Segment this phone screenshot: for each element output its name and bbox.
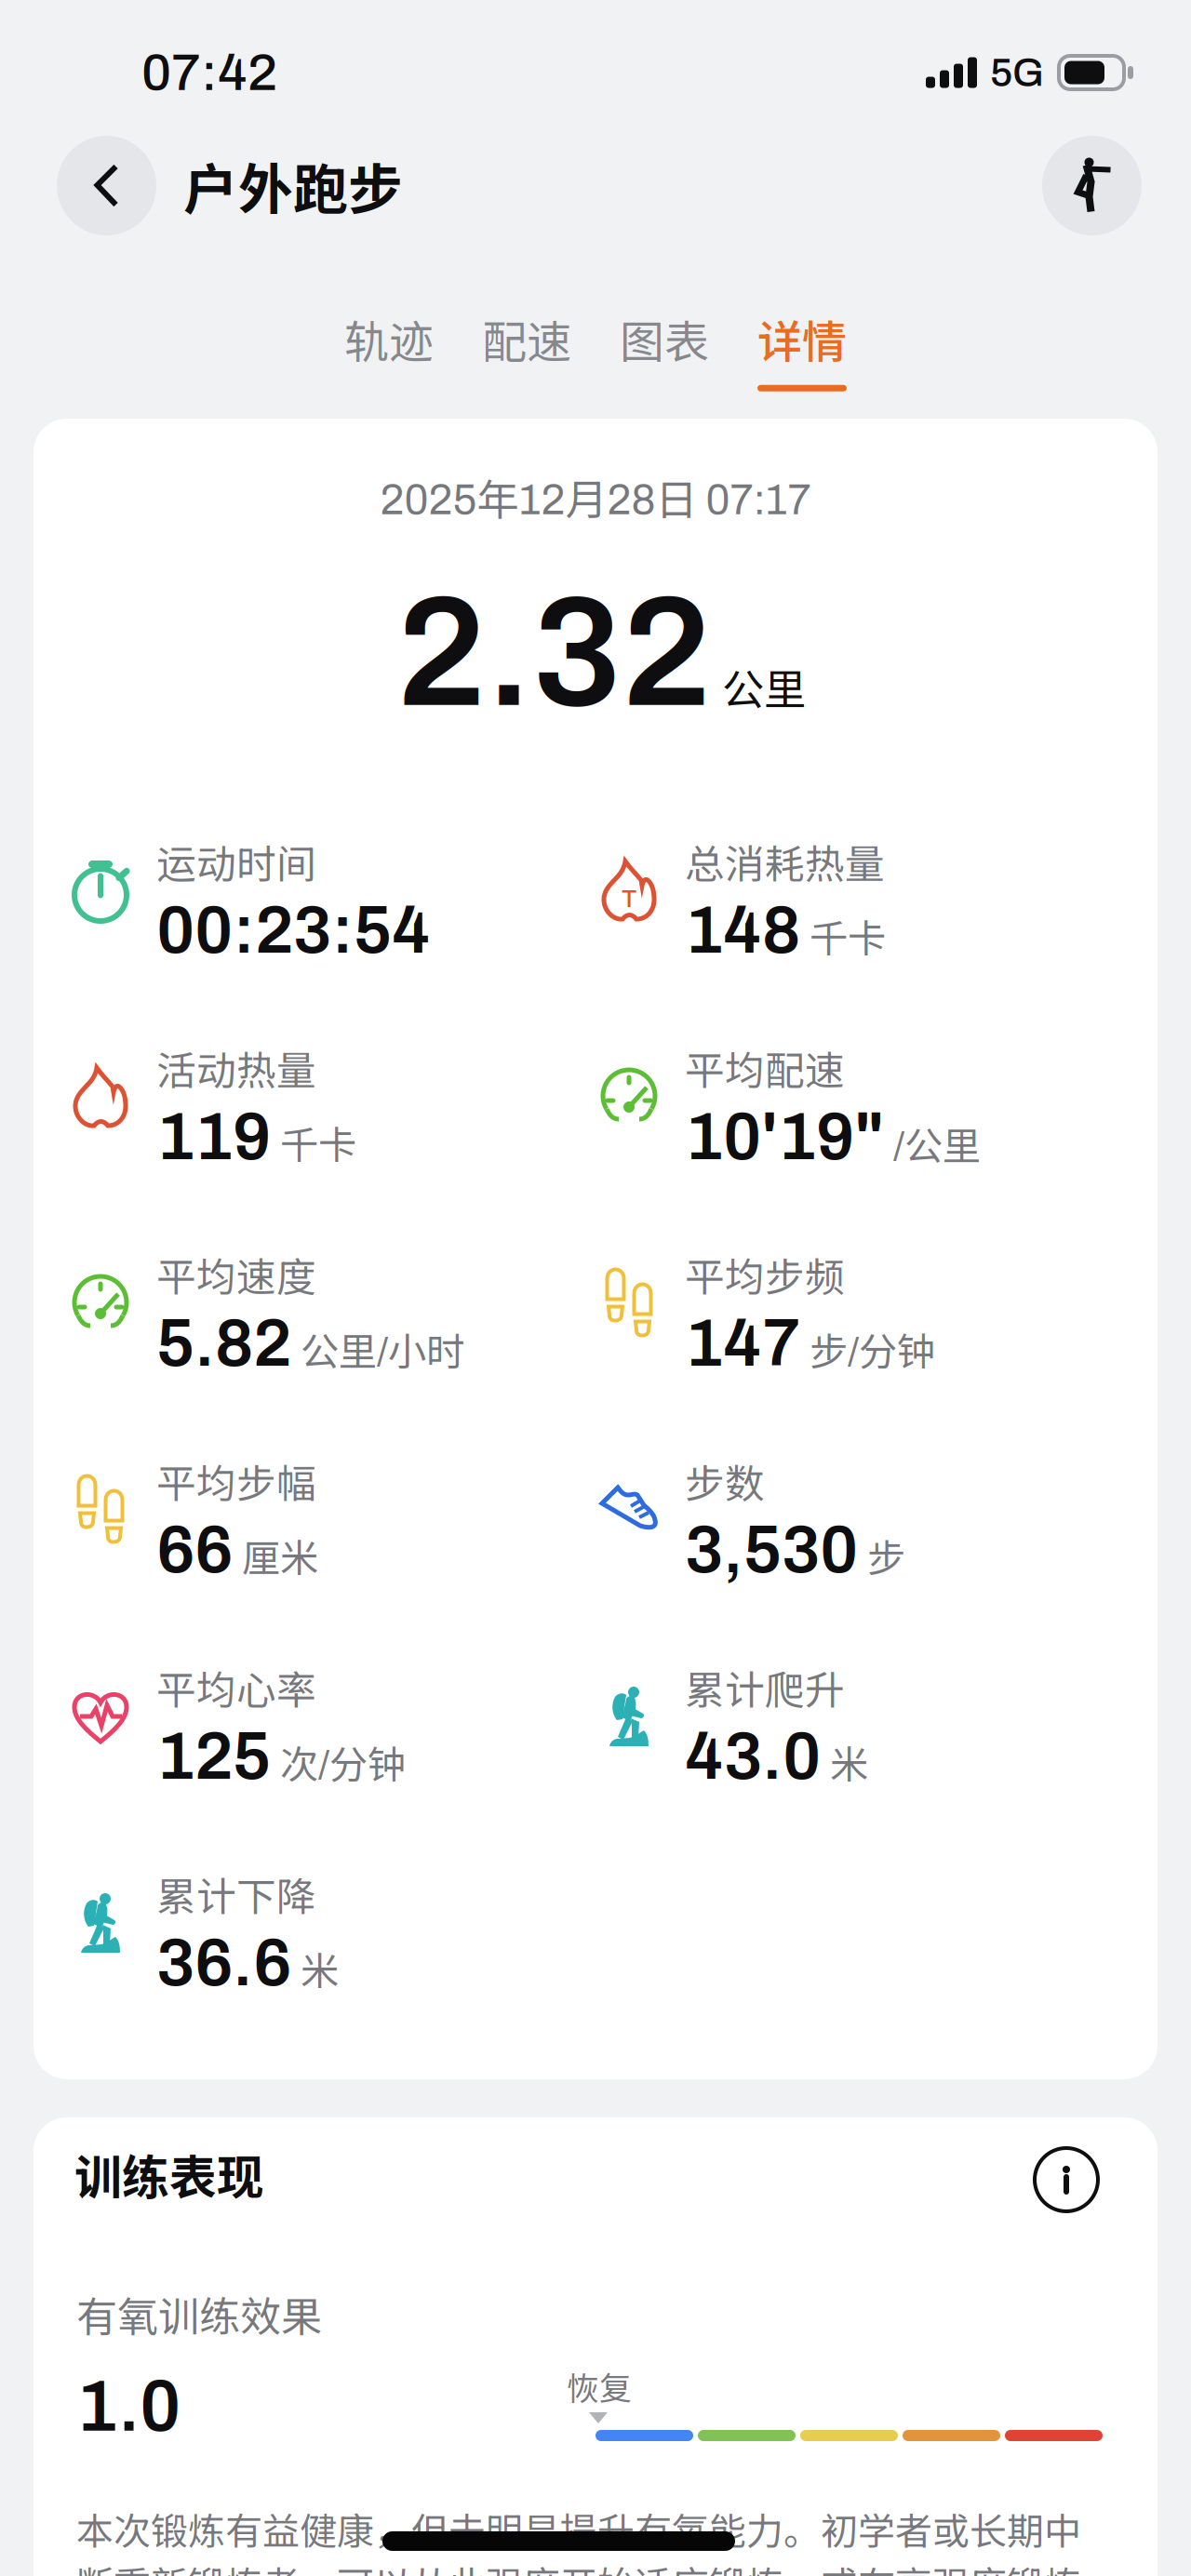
- staticText: 步数: [685, 1452, 765, 1510]
- staticText: 平均速度: [156, 1246, 316, 1303]
- staticText: 2025年12月28日 07:17: [380, 466, 811, 527]
- staticText: 累计爬升: [685, 1659, 845, 1716]
- staticText: 平均步幅: [156, 1452, 316, 1510]
- staticText: 平均步频: [685, 1246, 845, 1303]
- staticText: 米: [830, 1734, 868, 1790]
- staticText: 66: [156, 1513, 233, 1586]
- staticText: 有氧训练效果: [76, 2284, 322, 2343]
- staticText: 07:42: [141, 44, 277, 101]
- staticText: 00:23:54: [156, 894, 431, 967]
- staticText: 36.6: [156, 1926, 291, 1999]
- staticText: /公里: [893, 1116, 981, 1171]
- staticText: T: [622, 885, 636, 912]
- staticText: 千卡: [810, 908, 886, 964]
- staticText: 148: [685, 894, 800, 967]
- staticText: 本次锻炼有益健康，但未明显提升有氧能力。初学者或长期中断重新锻炼者，可以从此强度…: [76, 2502, 1081, 2576]
- staticText: 详情: [757, 306, 847, 371]
- staticText: 户外跑步: [183, 146, 403, 225]
- staticText: 运动时间: [156, 833, 316, 890]
- staticText: 147: [685, 1307, 800, 1380]
- button[interactable]: 配速: [458, 312, 595, 386]
- staticText: 5.82: [156, 1307, 291, 1380]
- staticText: 公里: [722, 656, 806, 717]
- staticText: 总消耗热量: [685, 833, 885, 890]
- staticText: 训练表现: [74, 2140, 264, 2208]
- staticText: 累计下降: [156, 1865, 316, 1923]
- button[interactable]: 详情: [733, 312, 871, 386]
- staticText: 恢复: [567, 2363, 632, 2410]
- staticText: 43.0: [685, 1720, 821, 1793]
- staticText: 米: [301, 1941, 339, 1996]
- staticText: 步/分钟: [810, 1321, 935, 1377]
- staticText: 平均配速: [685, 1039, 845, 1097]
- staticText: 千卡: [280, 1115, 356, 1170]
- button[interactable]: 训练表现说明: [1027, 2141, 1105, 2219]
- staticText: 119: [156, 1100, 271, 1173]
- staticText: 厘米: [242, 1528, 318, 1583]
- staticText: 10'19": [685, 1100, 884, 1173]
- staticText: 步: [867, 1528, 905, 1583]
- staticText: 3,530: [685, 1513, 858, 1586]
- button[interactable]: 轨迹: [320, 312, 458, 386]
- button[interactable]: 返回: [57, 136, 156, 235]
- staticText: 次/分钟: [280, 1734, 406, 1790]
- staticText: 平均心率: [156, 1659, 316, 1716]
- staticText: 5G: [990, 51, 1044, 94]
- staticText: 配速: [482, 306, 571, 371]
- button[interactable]: 运动类型: [1042, 136, 1142, 235]
- staticText: 125: [156, 1720, 271, 1793]
- button[interactable]: 图表: [595, 312, 733, 386]
- staticText: 图表: [620, 306, 709, 371]
- staticText: 活动热量: [156, 1039, 316, 1097]
- staticText: 2.32: [396, 569, 711, 737]
- staticText: 公里/小时: [301, 1321, 464, 1377]
- staticText: 1.0: [76, 2368, 181, 2446]
- staticText: 轨迹: [344, 306, 434, 371]
- button[interactable]: 训练表现: [74, 2146, 279, 2202]
